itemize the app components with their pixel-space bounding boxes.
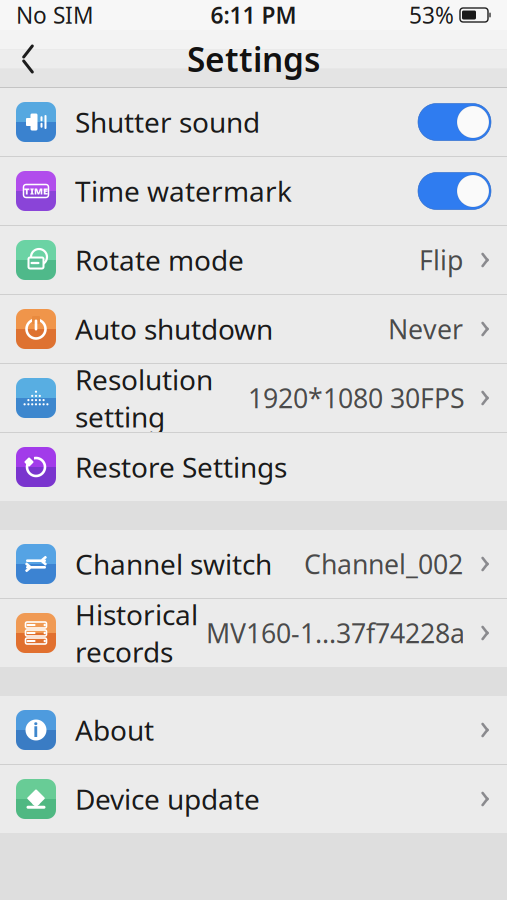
staticText: Channel switch xyxy=(75,545,272,583)
button[interactable]: i xyxy=(0,696,507,765)
button[interactable]: Historical records xyxy=(0,599,507,667)
staticText: No SIM xyxy=(16,0,94,30)
staticText: Time watermark xyxy=(75,172,292,210)
button[interactable]: TIME xyxy=(0,157,507,226)
staticText: Channel_002 xyxy=(304,546,463,582)
staticText: Never xyxy=(388,311,463,347)
staticText: About xyxy=(75,711,154,749)
button[interactable]: Rotate mode xyxy=(0,226,507,295)
button[interactable]: Restore Settings xyxy=(0,433,507,501)
staticText: 53% xyxy=(409,0,454,30)
button[interactable]: Back xyxy=(0,31,56,87)
button[interactable]: Resolution setting xyxy=(0,364,507,433)
staticText: MV160-1...37f74228a xyxy=(206,615,465,651)
staticText: Auto shutdown xyxy=(75,310,273,348)
staticText: Resolution setting xyxy=(75,361,213,435)
button[interactable]: Auto shutdown xyxy=(0,295,507,364)
button[interactable]: Channel switch xyxy=(0,530,507,599)
staticText: Shutter sound xyxy=(75,103,260,141)
staticText: 6:11 PM xyxy=(210,0,296,30)
button[interactable]: Shutter sound xyxy=(0,88,507,157)
staticText: Device update xyxy=(75,780,260,818)
staticText: i xyxy=(33,718,39,742)
staticText: TIME xyxy=(24,185,48,197)
staticText: Rotate mode xyxy=(75,241,244,279)
staticText: Flip xyxy=(419,242,463,278)
staticText: 1920*1080 30FPS xyxy=(248,380,465,416)
staticText: Settings xyxy=(187,37,320,81)
button[interactable]: Device update xyxy=(0,765,507,833)
staticText: Restore Settings xyxy=(75,448,287,486)
staticText: Historical records xyxy=(75,596,198,670)
